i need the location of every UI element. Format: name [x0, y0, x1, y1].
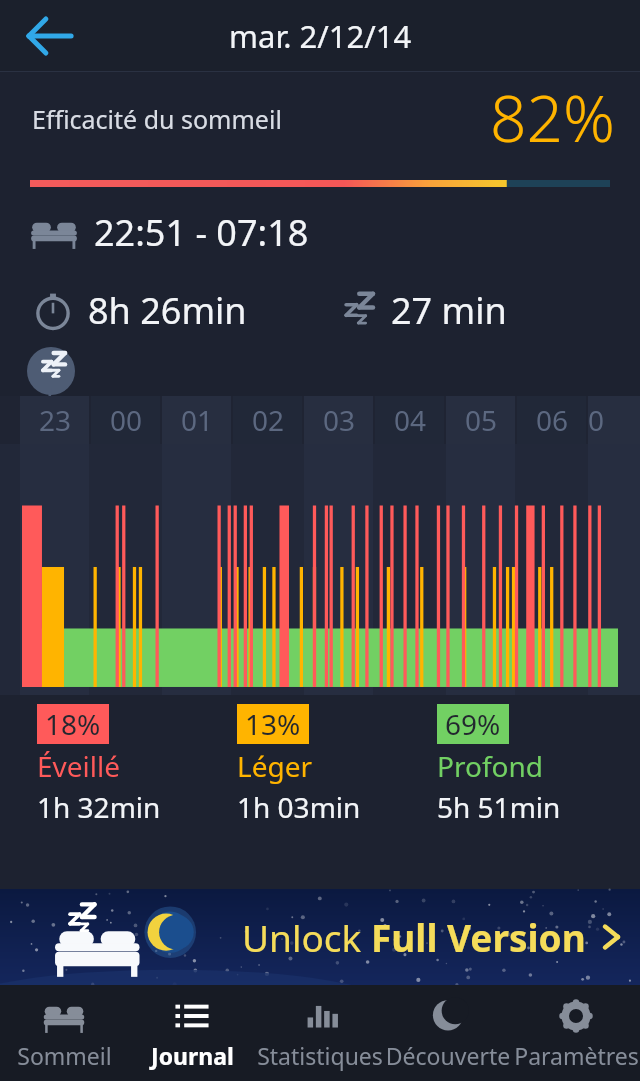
staticText: 82% [490, 74, 616, 161]
button[interactable]: Découvertes [384, 985, 512, 1081]
button[interactable]: Back [18, 4, 82, 68]
button[interactable]: Statistiques [256, 985, 384, 1081]
staticText: 8h 26min [88, 286, 247, 335]
staticText: Sommeil [17, 1040, 112, 1071]
staticText: 18% [45, 705, 101, 743]
staticText: 05 [465, 401, 498, 439]
staticText: Journal [151, 1040, 234, 1071]
staticText: 1h 03min [237, 788, 361, 823]
button[interactable]: Paramètres [512, 985, 640, 1081]
staticText: 02 [252, 401, 285, 439]
button[interactable]: Unlock [0, 889, 640, 985]
staticText: mar. 2/12/14 [229, 15, 412, 57]
staticText: 00 [110, 401, 143, 439]
button[interactable]: 69% [437, 704, 561, 823]
staticText: 5h 51min [437, 788, 561, 823]
staticText: 27 min [391, 286, 507, 335]
staticText: Efficacité du sommeil [32, 102, 282, 136]
button[interactable]: Journal [128, 985, 256, 1081]
staticText: Statistiques [257, 1040, 383, 1071]
staticText: 22:51 - 07:18 [94, 208, 309, 257]
button[interactable]: 13% [237, 704, 361, 823]
staticText: 1h 32min [37, 788, 161, 823]
staticText: Éveillé [37, 747, 121, 785]
staticText: 03 [323, 401, 356, 439]
staticText: Découvertes [384, 1040, 512, 1081]
staticText: 04 [394, 401, 427, 439]
button[interactable]: 18% [37, 704, 161, 823]
staticText: 06 [536, 401, 569, 439]
button[interactable]: Sommeil [0, 985, 128, 1081]
staticText: Full Version [371, 912, 586, 962]
staticText: 13% [245, 705, 301, 743]
staticText: Unlock [242, 912, 371, 962]
staticText: Paramètres [514, 1040, 639, 1071]
staticText: 0 [588, 401, 605, 439]
staticText: 23 [39, 401, 72, 439]
staticText: 01 [181, 401, 214, 439]
staticText: Profond [437, 747, 543, 785]
staticText: Léger [237, 747, 313, 785]
staticText: 69% [445, 705, 501, 743]
